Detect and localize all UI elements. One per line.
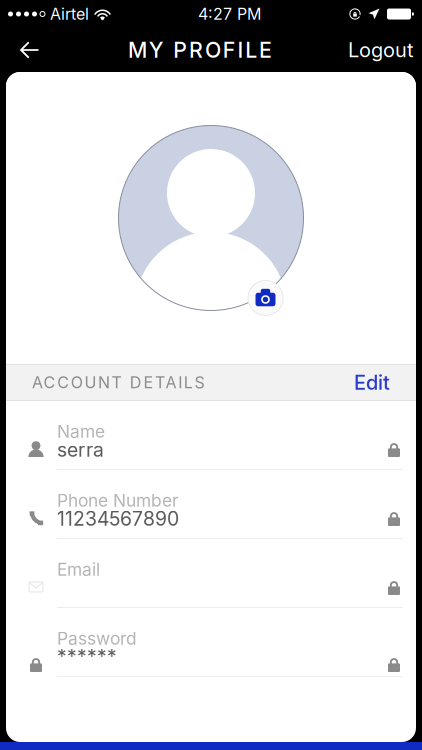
staticText: Edit [354,370,390,395]
button[interactable]: Edit [354,370,390,395]
staticText: 11234567890 [57,507,179,530]
staticText: Logout [348,38,414,62]
button[interactable]: Back [8,28,52,72]
button[interactable]: Phone Number [6,470,416,539]
staticText: serra [57,438,104,461]
staticText: Airtel [50,4,89,24]
button[interactable]: Password [6,608,416,677]
staticText: Password [57,628,137,649]
staticText: Phone Number [57,490,179,511]
staticText: ACCOUNT DETAILS [32,373,204,392]
button[interactable]: Name [6,401,416,470]
staticText: Name [57,421,105,442]
staticText: Email [57,559,100,580]
button[interactable]: Logout [348,28,414,72]
button[interactable]: Change photo [248,280,283,315]
staticText: ****** [57,645,117,668]
button[interactable]: Email [6,539,416,608]
staticText: MY PROFILE [128,37,272,63]
staticText: 4:27 PM [198,4,261,24]
